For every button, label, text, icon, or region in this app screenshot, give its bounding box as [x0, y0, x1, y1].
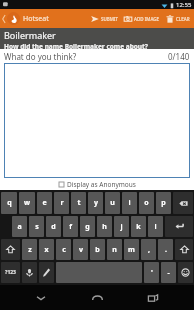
staticText: CLEAR	[176, 16, 190, 22]
staticText: m	[128, 245, 135, 255]
staticText: b	[95, 245, 100, 255]
button[interactable]: Enter	[165, 216, 193, 237]
button[interactable]: '	[144, 262, 159, 283]
button[interactable]: s	[29, 216, 44, 237]
button[interactable]: j	[114, 216, 129, 237]
button[interactable]: i	[122, 192, 137, 214]
button[interactable]: Shift	[175, 239, 193, 260]
button[interactable]: Recent apps	[138, 285, 168, 310]
button[interactable]: e	[37, 192, 52, 214]
button[interactable]: d	[46, 216, 61, 237]
staticText: Display as Anonymous	[67, 180, 136, 189]
staticText: e	[42, 198, 47, 208]
staticText: q	[7, 198, 12, 208]
button[interactable]: u	[105, 192, 120, 214]
staticText: d	[51, 222, 56, 232]
button[interactable]: q	[1, 192, 17, 214]
staticText: c	[62, 245, 66, 255]
button[interactable]: Answer text field	[4, 63, 190, 178]
staticText: n	[112, 245, 117, 255]
staticText: z	[28, 245, 32, 255]
button[interactable]: Voice input	[22, 262, 37, 283]
staticText: f	[69, 222, 72, 232]
staticText: s	[35, 222, 39, 232]
button[interactable]: y	[88, 192, 103, 214]
button[interactable]: n	[107, 239, 122, 260]
staticText: w	[24, 198, 30, 208]
button[interactable]: Hide keyboard	[26, 285, 56, 310]
button[interactable]: SUBMIT	[88, 9, 121, 28]
button[interactable]: Handwriting	[39, 262, 54, 283]
button[interactable]: CLEAR	[163, 9, 193, 28]
staticText: Hotseat	[23, 14, 49, 24]
staticText: What do you think?	[4, 51, 77, 62]
staticText: 12:55	[176, 1, 192, 9]
staticText: a	[17, 222, 22, 232]
staticText: r	[60, 198, 64, 208]
staticText: v	[79, 245, 83, 255]
staticText: '	[151, 268, 153, 278]
button[interactable]: m	[124, 239, 139, 260]
button[interactable]: p	[156, 192, 171, 214]
staticText: o	[144, 198, 149, 208]
staticText: p	[161, 198, 166, 208]
staticText: ?123	[5, 269, 16, 276]
staticText: u	[110, 198, 115, 208]
button[interactable]: t	[71, 192, 86, 214]
button[interactable]: Up	[0, 10, 51, 27]
button[interactable]: Home	[82, 285, 112, 310]
staticText: j	[120, 222, 123, 232]
staticText: h	[102, 222, 107, 232]
button[interactable]: h	[97, 216, 112, 237]
button[interactable]: Emoji	[178, 262, 193, 283]
button[interactable]: Delete	[173, 192, 193, 214]
staticText: y	[94, 198, 98, 208]
staticText: -	[167, 268, 170, 278]
button[interactable]: o	[139, 192, 154, 214]
button[interactable]: x	[39, 239, 54, 260]
staticText: 0/140	[168, 51, 190, 62]
button[interactable]: .	[158, 239, 173, 260]
staticText: ADD IMAGE	[134, 16, 160, 22]
button[interactable]: z	[22, 239, 37, 260]
staticText: Boilermaker	[4, 29, 56, 41]
button[interactable]: k	[131, 216, 146, 237]
staticText: i	[128, 198, 131, 208]
button[interactable]: c	[56, 239, 71, 260]
button[interactable]: Shift	[1, 239, 20, 260]
staticText: t	[77, 198, 81, 208]
button[interactable]: v	[73, 239, 88, 260]
staticText: l	[154, 222, 157, 232]
button[interactable]: ,	[141, 239, 156, 260]
staticText: SUBMIT	[101, 16, 118, 22]
button[interactable]: g	[80, 216, 95, 237]
button[interactable]: -	[161, 262, 176, 283]
button[interactable]: f	[63, 216, 78, 237]
button[interactable]: a	[12, 216, 27, 237]
staticText: How did the name Boilermaker come about?	[4, 42, 148, 49]
button[interactable]: r	[54, 192, 69, 214]
button[interactable]: Display as Anonymous	[57, 179, 138, 190]
button[interactable]: l	[148, 216, 163, 237]
staticText: ,	[148, 245, 150, 255]
button[interactable]: b	[90, 239, 105, 260]
staticText: .	[165, 245, 167, 255]
staticText: g	[85, 222, 90, 232]
button[interactable]: w	[19, 192, 35, 214]
staticText: k	[136, 222, 141, 232]
staticText: x	[44, 245, 49, 255]
button[interactable]: ADD IMAGE	[121, 9, 163, 28]
button[interactable]: ?123	[1, 262, 20, 283]
